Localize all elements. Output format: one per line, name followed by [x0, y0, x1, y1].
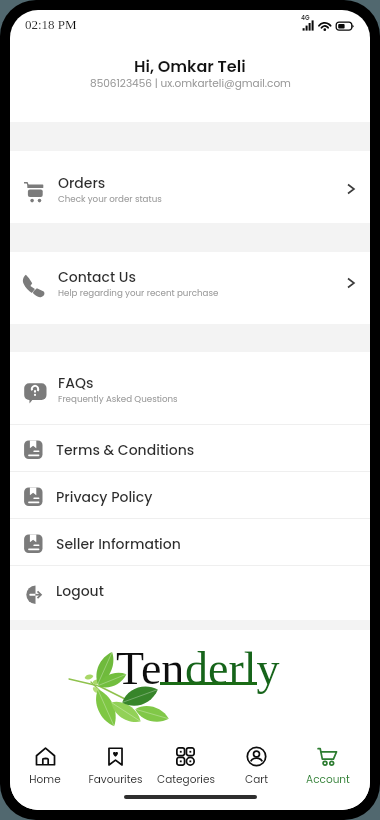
staticText: FAQs	[58, 373, 94, 393]
staticText: Terms & Conditions	[56, 440, 195, 460]
staticText: Logout	[56, 581, 104, 601]
staticText: Frequently Asked Questions	[58, 393, 178, 405]
staticText: Cart	[245, 772, 268, 787]
button[interactable]: Seller Information	[10, 519, 370, 565]
button[interactable]: Cart	[221, 745, 292, 787]
staticText: Contact Us	[58, 267, 136, 287]
button[interactable]: Orders	[10, 151, 370, 223]
button[interactable]: FAQs	[10, 352, 370, 424]
staticText: Check your order status	[58, 193, 162, 205]
staticText: Account	[306, 772, 350, 787]
staticText: Favourites	[88, 772, 143, 787]
button[interactable]: Terms & Conditions	[10, 425, 370, 471]
staticText: Categories	[157, 772, 215, 787]
staticText: Seller Information	[56, 534, 181, 554]
staticText: 4G	[301, 14, 310, 22]
staticText: Privacy Policy	[56, 487, 153, 507]
staticText: Help regarding your recent purchase	[58, 287, 219, 299]
button[interactable]: Logout	[10, 566, 370, 612]
button[interactable]: Account	[292, 745, 363, 787]
button[interactable]: Favourites	[80, 745, 150, 787]
button[interactable]: Categories	[150, 745, 221, 787]
staticText: Ten	[116, 643, 185, 694]
staticText: Orders	[58, 173, 106, 193]
button[interactable]: Contact Us	[10, 252, 370, 324]
staticText: Home	[29, 772, 61, 787]
staticText: 02:18 PM	[25, 17, 77, 31]
staticText: 8506123456 | ux.omkarteli@gmail.com	[90, 76, 291, 91]
staticText: derly	[185, 643, 280, 694]
button[interactable]: Privacy Policy	[10, 472, 370, 518]
staticText: Hi, Omkar Teli	[134, 55, 246, 77]
button[interactable]: Home	[10, 745, 80, 787]
